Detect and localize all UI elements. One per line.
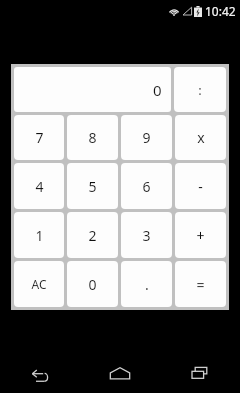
staticText: .	[145, 275, 149, 294]
staticText: 1	[35, 226, 44, 245]
staticText: 0	[88, 275, 97, 294]
staticText: =	[196, 275, 205, 294]
staticText: AC	[31, 276, 47, 292]
staticText: 2	[88, 226, 97, 245]
button[interactable]: 0	[14, 67, 171, 112]
button[interactable]: 9	[121, 115, 172, 160]
button[interactable]: :	[174, 67, 226, 112]
staticText: +	[196, 226, 205, 245]
button[interactable]: =	[175, 261, 226, 307]
button[interactable]: x	[175, 115, 226, 160]
button[interactable]: 4	[14, 163, 64, 209]
button[interactable]: 1	[14, 212, 64, 258]
button[interactable]: 3	[121, 212, 172, 258]
button[interactable]: AC	[14, 261, 64, 307]
button[interactable]: Home	[80, 353, 160, 393]
button[interactable]: .	[121, 261, 172, 307]
button[interactable]: 5	[67, 163, 118, 209]
staticText: 9	[142, 128, 151, 147]
staticText: 7	[35, 128, 44, 147]
staticText: -	[198, 177, 203, 196]
staticText: 10:42	[205, 3, 236, 19]
button[interactable]: 0	[67, 261, 118, 307]
staticText: x	[197, 128, 205, 147]
staticText: 5	[88, 177, 97, 196]
button[interactable]: Back	[0, 353, 80, 393]
staticText: 6	[142, 177, 151, 196]
staticText: 3	[142, 226, 151, 245]
staticText: 0	[153, 80, 162, 100]
button[interactable]: Recent apps	[160, 353, 240, 393]
button[interactable]: 2	[67, 212, 118, 258]
button[interactable]: +	[175, 212, 226, 258]
button[interactable]: 6	[121, 163, 172, 209]
button[interactable]: 8	[67, 115, 118, 160]
button[interactable]: 7	[14, 115, 64, 160]
staticText: :	[198, 81, 202, 99]
staticText: 4	[35, 177, 44, 196]
button[interactable]: -	[175, 163, 226, 209]
staticText: 8	[88, 128, 97, 147]
